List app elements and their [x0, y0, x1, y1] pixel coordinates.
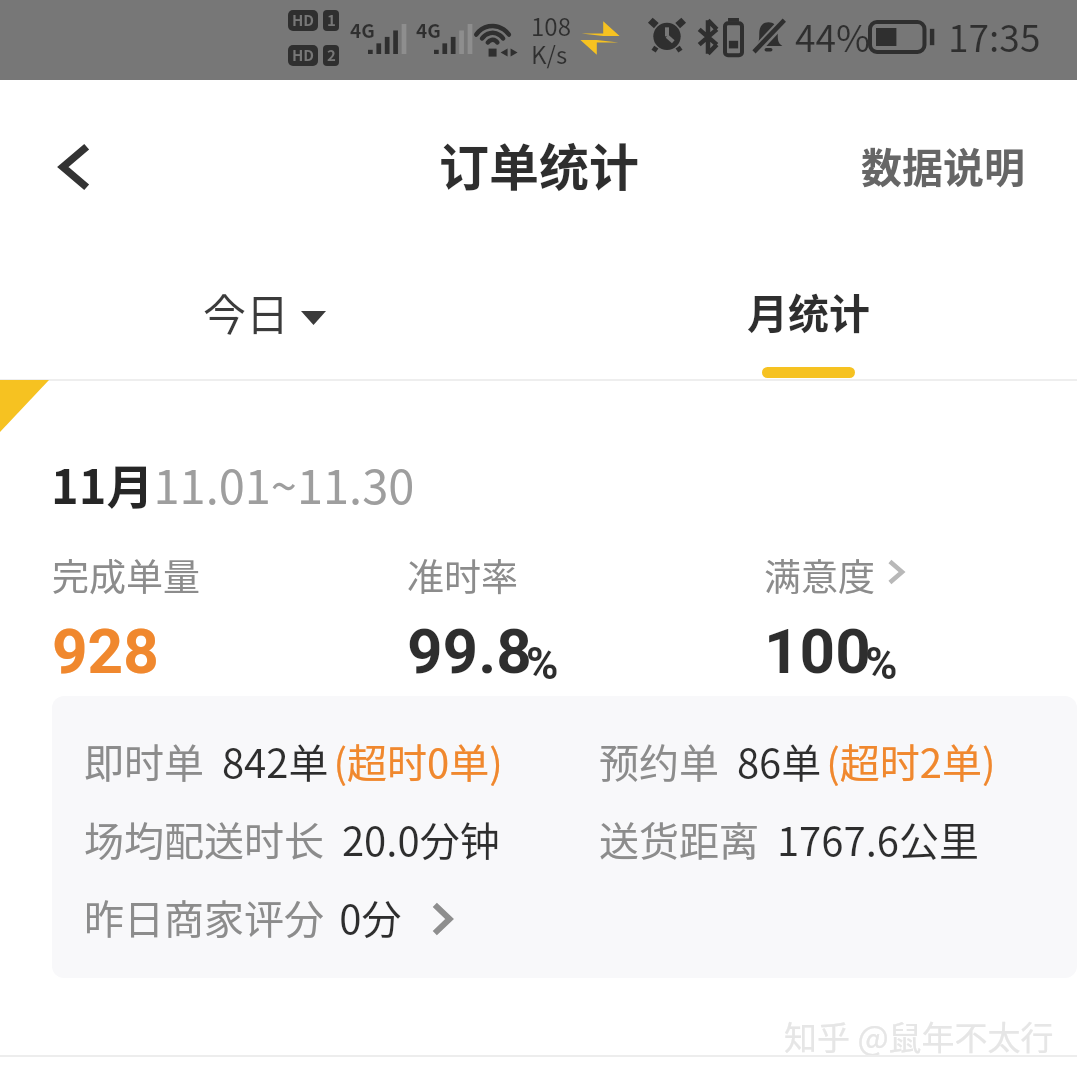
button[interactable]: 月统计: [667, 261, 950, 376]
staticText: HD: [292, 45, 315, 65]
staticText: 送货距离 1767.6公里: [599, 810, 980, 868]
staticText: %: [865, 638, 898, 690]
button[interactable]: 数据说明: [837, 115, 1049, 214]
staticText: 4G: [416, 16, 441, 44]
staticText: HD: [292, 10, 315, 30]
button[interactable]: 今日: [123, 261, 406, 379]
staticText: 准时率: [407, 548, 518, 602]
staticText: 99.8: [407, 615, 532, 688]
staticText: 4G: [350, 16, 375, 44]
button[interactable]: 满意度: [748, 536, 944, 689]
staticText: 昨日商家评分 0分: [84, 888, 402, 946]
staticText: 月统计: [747, 281, 870, 340]
staticText: 2: [327, 45, 336, 65]
staticText: 满意度: [764, 548, 875, 602]
staticText: 1: [327, 10, 336, 30]
button[interactable]: 昨日商家评分 0分: [84, 888, 452, 946]
staticText: 场均配送时长 20.0分钟: [84, 810, 500, 868]
staticText: 今日: [203, 281, 289, 343]
staticText: 100: [764, 615, 871, 688]
staticText: 928: [52, 615, 159, 688]
staticText: 17:35: [948, 9, 1041, 63]
staticText: 知乎 @鼠年不太行: [784, 1012, 1054, 1060]
staticText: 108: [531, 8, 571, 43]
staticText: K/s: [531, 36, 568, 71]
staticText: 44%: [795, 9, 871, 63]
staticText: 完成单量: [52, 548, 200, 602]
staticText: %: [526, 638, 559, 690]
staticText: 订单统计: [439, 128, 639, 200]
staticText: 11月11.01~11.30: [51, 449, 415, 517]
staticText: 预约单 86单 (超时2单): [599, 732, 996, 790]
button[interactable]: 完成单量: [36, 536, 240, 689]
button[interactable]: Back: [32, 124, 112, 204]
staticText: 即时单 842单 (超时0单): [84, 732, 503, 790]
staticText: 数据说明: [861, 135, 1025, 194]
button[interactable]: 准时率: [391, 536, 605, 689]
